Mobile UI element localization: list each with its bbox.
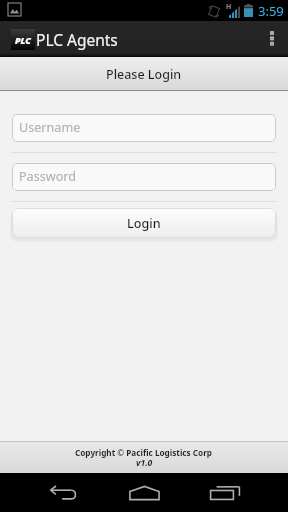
staticText: 3:59 xyxy=(258,2,284,20)
staticText: H xyxy=(226,2,232,12)
button[interactable]: Recent apps xyxy=(207,473,242,512)
staticText: Username xyxy=(19,119,81,136)
staticText: Login xyxy=(127,215,161,232)
button[interactable]: Login xyxy=(12,208,276,238)
staticText: v1.0 xyxy=(136,457,153,469)
button[interactable]: Password xyxy=(12,163,276,191)
button[interactable]: Back xyxy=(46,473,81,512)
button[interactable]: Home xyxy=(127,473,162,512)
staticText: Copyright © Pacific Logistics Corp xyxy=(75,447,213,458)
staticText: Password xyxy=(19,168,76,185)
staticText: PLC Agents xyxy=(36,29,118,50)
button[interactable]: More options xyxy=(256,21,288,57)
staticText: PLC xyxy=(15,34,31,46)
button[interactable]: Username xyxy=(12,114,276,142)
staticText: Please Login xyxy=(106,66,182,83)
